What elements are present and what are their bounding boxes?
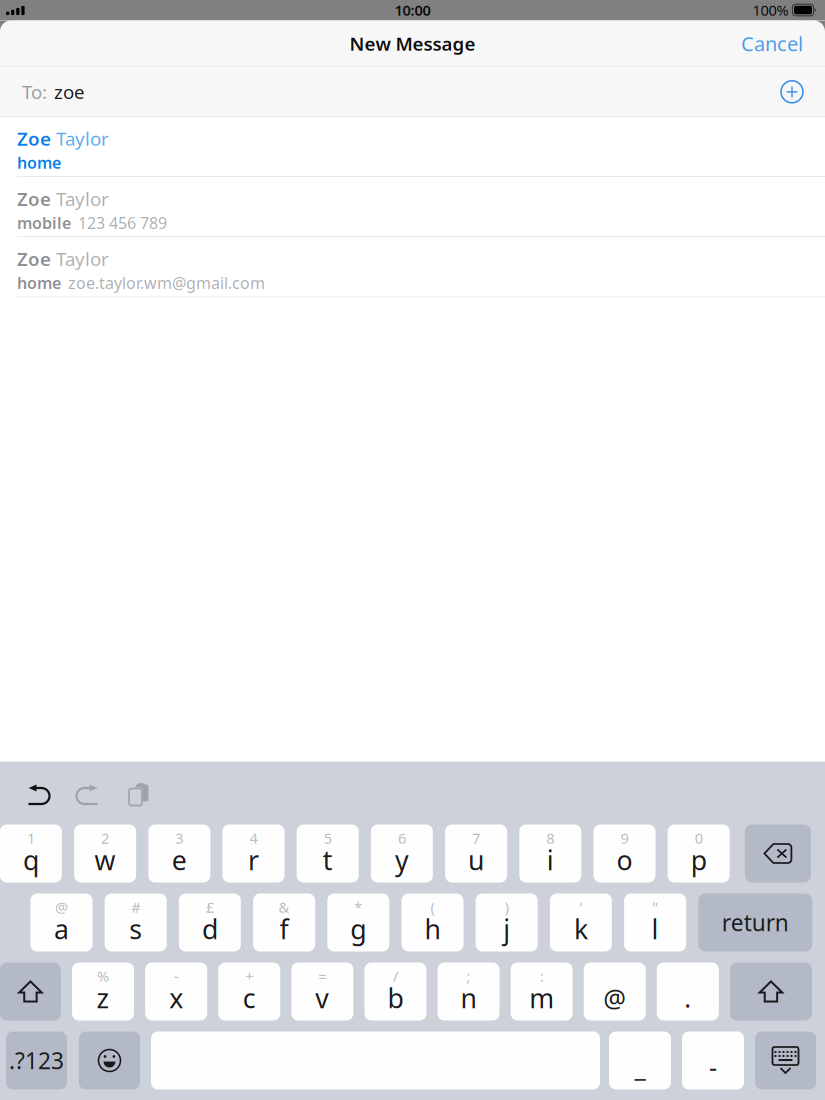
staticText: z [97,980,110,1016]
staticText: New Message [349,31,475,56]
button[interactable]: / [364,962,426,1020]
button[interactable]: @ [30,893,92,951]
staticText: + [245,966,253,986]
button[interactable]: Shift [0,962,61,1020]
staticText: y [395,842,409,878]
button[interactable]: 9 [593,824,655,882]
staticText: Zoe [17,246,51,271]
staticText: 6 [398,828,406,848]
staticText: zoe.taylor.wm@gmail.com [68,272,265,293]
button[interactable]: & [253,893,315,951]
button[interactable]: Paste [120,777,156,813]
button[interactable]: # [105,893,167,951]
button[interactable]: Redo [68,777,106,813]
staticText: 7 [472,828,480,848]
staticText: x [169,980,183,1016]
staticText: ‘ [579,897,582,917]
staticText: mobile [17,212,71,233]
button[interactable]: Zoe [0,237,825,297]
staticText: s [129,911,142,947]
staticText: @ [603,981,626,1015]
staticText: g [350,911,366,947]
button[interactable]: Backspace [742,824,811,882]
button[interactable]: 7 [445,824,507,882]
staticText: 10:00 [394,0,430,20]
button[interactable]: Add contact [779,79,805,105]
staticText: c [243,980,256,1016]
staticText: r [248,842,259,878]
staticText: To: [22,79,47,104]
button[interactable]: ‘ [550,893,612,951]
staticText: Taylor [56,126,109,151]
button[interactable]: £ [179,893,241,951]
staticText: return [722,907,789,937]
staticText: £ [206,897,214,917]
button[interactable]: . [657,962,719,1020]
button[interactable]: Zoe [0,177,825,236]
staticText: 9 [620,828,628,848]
button[interactable]: 3 [148,824,210,882]
button[interactable]: % [72,962,134,1020]
staticText: ; [467,966,471,986]
button[interactable]: 8 [519,824,581,882]
staticText: q [23,842,39,878]
staticText: : [540,966,544,986]
button[interactable]: - [682,1031,744,1089]
staticText: * [354,897,362,917]
staticText: 123 456 789 [78,212,167,233]
button[interactable]: @ [584,962,646,1020]
button[interactable]: .?123 [6,1031,67,1089]
button[interactable]: : [511,962,573,1020]
button[interactable]: - [145,962,207,1020]
staticText: k [574,911,588,947]
staticText: 1 [27,828,35,848]
staticText: i [547,842,554,878]
staticText: v [315,980,329,1016]
button[interactable]: Space [151,1031,600,1089]
staticText: Zoe [17,186,51,211]
staticText: ) [505,897,509,917]
button[interactable]: Cancel [741,30,825,57]
button[interactable]: Zoe [0,117,825,176]
button[interactable]: Hide keyboard [755,1031,816,1089]
button[interactable]: = [291,962,353,1020]
button[interactable]: + [218,962,280,1020]
staticText: 0 [695,828,703,848]
staticText: ( [430,897,434,917]
button[interactable]: Shift [730,962,812,1020]
staticText: - [709,1050,717,1084]
staticText: & [279,897,290,917]
staticText: a [54,911,69,947]
button[interactable]: 6 [371,824,433,882]
button[interactable]: 0 [668,824,730,882]
button[interactable]: ; [438,962,500,1020]
button[interactable]: return [698,893,812,951]
button[interactable]: * [327,893,389,951]
button[interactable]: ) [476,893,538,951]
button[interactable]: ( [401,893,463,951]
staticText: t [323,842,333,878]
staticText: m [529,980,554,1016]
staticText: 4 [249,828,257,848]
staticText: b [387,980,403,1016]
button[interactable]: ” [624,893,686,951]
staticText: w [95,842,116,878]
button[interactable]: 1 [0,824,62,882]
staticText: home [17,272,61,293]
button[interactable]: 5 [297,824,359,882]
staticText: home [17,152,61,173]
button[interactable]: 2 [74,824,136,882]
staticText: = [318,966,326,986]
staticText: Zoe [17,126,51,151]
staticText: zoe [54,79,85,104]
button[interactable]: Emoji [79,1031,140,1089]
button[interactable]: Undo [20,777,58,813]
button[interactable]: 4 [222,824,284,882]
staticText: e [172,842,187,878]
button[interactable]: _ [609,1031,671,1089]
staticText: 100% [752,0,788,20]
staticText: 3 [175,828,183,848]
staticText: Taylor [56,186,109,211]
staticText: _ [634,1050,645,1084]
staticText: Taylor [56,246,109,271]
